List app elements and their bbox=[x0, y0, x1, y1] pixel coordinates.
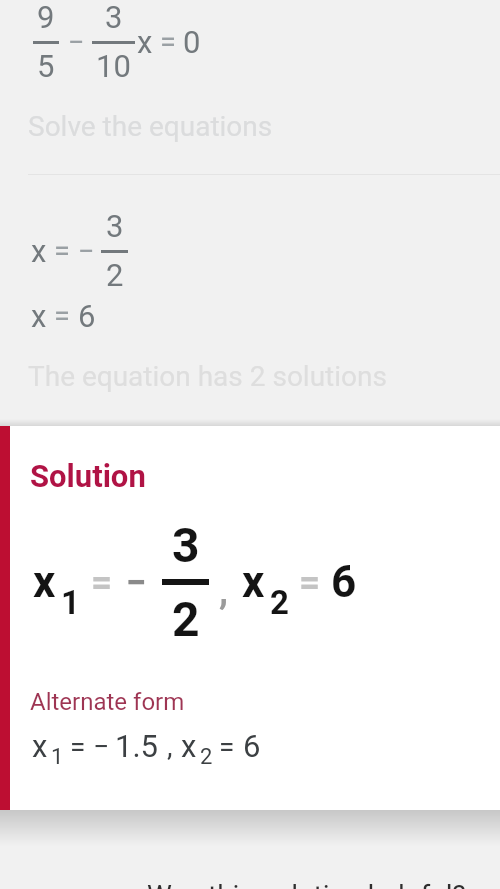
staticText: = bbox=[54, 299, 70, 333]
staticText: 10 bbox=[96, 48, 131, 84]
staticText: 2 bbox=[106, 257, 124, 293]
staticText: x bbox=[31, 233, 47, 269]
staticText: = bbox=[219, 730, 235, 763]
staticText: x bbox=[137, 24, 153, 60]
staticText: 6 bbox=[78, 298, 96, 334]
staticText: 3 bbox=[106, 208, 124, 244]
staticText: = bbox=[54, 234, 70, 268]
staticText: Solve the equations bbox=[28, 110, 273, 143]
staticText: = bbox=[299, 561, 321, 604]
staticText: = bbox=[160, 25, 176, 59]
staticText: x bbox=[242, 556, 265, 608]
staticText: 5 bbox=[37, 48, 55, 84]
staticText: Was this solution helpful? bbox=[147, 879, 466, 889]
staticText: 1.5 bbox=[115, 728, 159, 764]
staticText: 3 bbox=[172, 517, 200, 573]
staticText: Solution bbox=[30, 458, 146, 494]
staticText: 1 bbox=[51, 744, 64, 770]
staticText: − bbox=[126, 561, 147, 604]
staticText: , bbox=[167, 730, 173, 763]
staticText: − bbox=[78, 234, 95, 268]
staticText: 3 bbox=[105, 0, 123, 35]
staticText: 1 bbox=[61, 583, 80, 622]
button[interactable]: Solution bbox=[0, 426, 500, 810]
staticText: 2 bbox=[270, 583, 289, 622]
staticText: = bbox=[91, 561, 113, 604]
staticText: , bbox=[219, 569, 229, 612]
staticText: The equation has 2 solutions bbox=[28, 360, 387, 393]
staticText: Alternate form bbox=[30, 688, 185, 716]
staticText: 9 bbox=[37, 0, 55, 35]
staticText: − bbox=[68, 25, 85, 59]
staticText: x bbox=[32, 728, 48, 764]
staticText: − bbox=[93, 730, 110, 763]
staticText: 0 bbox=[183, 24, 201, 60]
staticText: 6 bbox=[331, 556, 357, 608]
staticText: x bbox=[181, 728, 197, 764]
staticText: x bbox=[33, 556, 56, 608]
staticText: 6 bbox=[243, 728, 261, 764]
staticText: 2 bbox=[172, 591, 200, 647]
staticText: x bbox=[31, 298, 47, 334]
staticText: 2 bbox=[200, 744, 213, 770]
staticText: = bbox=[70, 730, 86, 763]
